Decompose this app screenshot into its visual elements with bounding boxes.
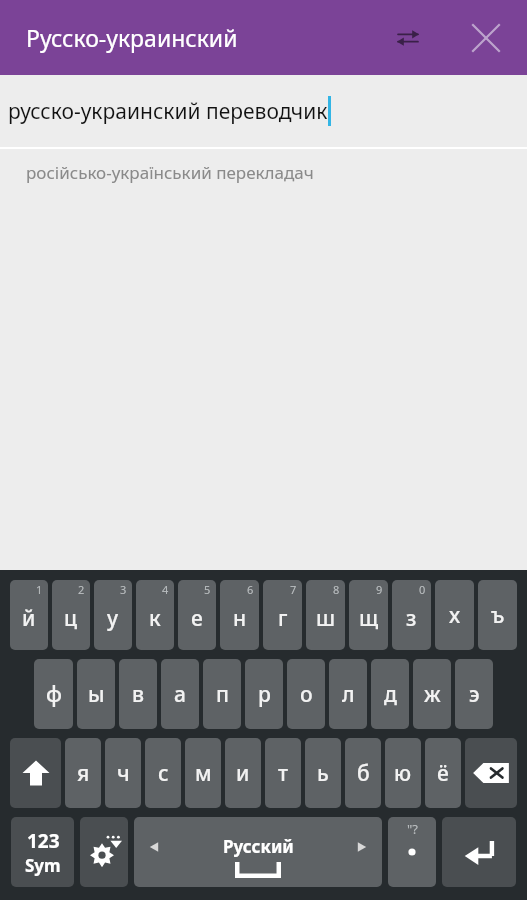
staticText: 9 (376, 582, 383, 597)
button[interactable]: 4 (136, 580, 174, 650)
button[interactable]: 123 (11, 817, 74, 887)
button[interactable]: 7 (263, 580, 302, 650)
staticText: ю (394, 759, 412, 788)
staticText: н (233, 604, 247, 633)
button[interactable]: Swap languages (384, 14, 432, 62)
button[interactable]: російсько-український перекладач (0, 149, 527, 195)
staticText: т (278, 759, 289, 788)
button[interactable]: Backspace (465, 738, 517, 808)
staticText: 123 (27, 828, 60, 854)
button[interactable]: 1 (10, 580, 48, 650)
button[interactable]: ы (77, 659, 115, 729)
staticText: Sym (25, 854, 61, 877)
button[interactable]: я (65, 738, 101, 808)
staticText: ё (437, 759, 449, 788)
staticText: "? (407, 820, 418, 838)
button[interactable]: ч (105, 738, 141, 808)
staticText: ъ (491, 601, 505, 630)
button[interactable]: 2 (52, 580, 90, 650)
staticText: х (449, 601, 461, 630)
staticText: з (406, 604, 417, 633)
button[interactable]: л (329, 659, 367, 729)
button[interactable]: ь (305, 738, 341, 808)
staticText: б (357, 759, 370, 788)
button[interactable]: ю (385, 738, 421, 808)
button[interactable]: х (435, 580, 474, 650)
button[interactable]: п (203, 659, 241, 729)
staticText: у (107, 604, 119, 633)
button[interactable]: Close (459, 11, 513, 65)
button[interactable]: 8 (306, 580, 345, 650)
button[interactable]: 9 (349, 580, 388, 650)
staticText: я (77, 759, 90, 788)
staticText: Русский (223, 835, 294, 858)
button[interactable]: 5 (178, 580, 216, 650)
staticText: ь (317, 759, 329, 788)
button[interactable]: Settings (80, 817, 128, 887)
button[interactable]: ъ (478, 580, 517, 650)
button[interactable]: м (185, 738, 221, 808)
staticText: щ (359, 604, 379, 633)
button[interactable]: ж (413, 659, 451, 729)
other: Shift (10, 738, 61, 808)
button[interactable]: Period (388, 817, 436, 887)
staticText: російсько-український перекладач (26, 161, 314, 184)
staticText: 8 (333, 582, 340, 597)
staticText: ф (46, 680, 62, 709)
staticText: 3 (120, 582, 127, 597)
staticText: 5 (204, 582, 211, 597)
staticText: 7 (290, 582, 297, 597)
staticText: э (469, 680, 480, 709)
staticText: л (342, 680, 355, 709)
button[interactable]: в (119, 659, 157, 729)
staticText: ч (117, 759, 130, 788)
staticText: 1 (36, 582, 43, 597)
staticText: Русско-украинский (26, 22, 238, 53)
button[interactable]: э (455, 659, 493, 729)
staticText: 4 (162, 582, 169, 597)
staticText: ы (88, 680, 105, 709)
staticText: 2 (78, 582, 85, 597)
button[interactable]: т (265, 738, 301, 808)
button[interactable]: б (345, 738, 381, 808)
staticText: д (384, 680, 397, 709)
button[interactable]: Shift (10, 738, 61, 808)
button[interactable]: Enter (442, 817, 516, 887)
staticText: и (236, 759, 250, 788)
staticText: п (216, 680, 229, 709)
staticText: ж (424, 680, 441, 709)
staticText: м (195, 759, 212, 788)
staticText: о (300, 680, 313, 709)
staticText: ц (64, 604, 78, 633)
button[interactable]: р (245, 659, 283, 729)
staticText: с (158, 759, 169, 788)
button[interactable]: Русский (134, 817, 382, 887)
staticText: г (278, 604, 288, 633)
button[interactable]: 6 (220, 580, 259, 650)
staticText: 6 (247, 582, 254, 597)
other: Backspace (465, 738, 517, 808)
button[interactable]: и (225, 738, 261, 808)
staticText: а (174, 680, 186, 709)
staticText: р (258, 680, 271, 709)
button[interactable]: ё (425, 738, 461, 808)
button[interactable]: с (145, 738, 181, 808)
staticText: 0 (419, 582, 426, 597)
staticText: е (191, 604, 203, 633)
button[interactable]: д (371, 659, 409, 729)
button[interactable]: русско-украинский переводчик (0, 75, 527, 147)
staticText: к (149, 604, 161, 633)
staticText: русско-украинский переводчик (8, 97, 328, 126)
button[interactable]: 0 (392, 580, 431, 650)
staticText: в (132, 680, 145, 709)
staticText: ш (316, 604, 336, 633)
button[interactable]: 3 (94, 580, 132, 650)
button[interactable]: ф (34, 659, 73, 729)
staticText: й (22, 604, 36, 633)
button[interactable]: а (161, 659, 199, 729)
button[interactable]: о (287, 659, 325, 729)
